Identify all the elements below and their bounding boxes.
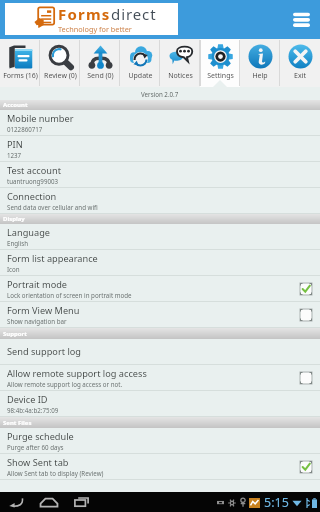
button[interactable]: Mobile number	[0, 110, 320, 136]
button[interactable]: Review (0)	[40, 39, 80, 87]
staticText: Form list appearance	[7, 252, 98, 265]
staticText: Exit	[294, 71, 306, 81]
staticText: Account	[3, 101, 28, 109]
button[interactable]: Language	[0, 224, 320, 250]
staticText: Language	[7, 226, 50, 239]
staticText: Test account	[7, 164, 61, 177]
staticText: Sent Files	[3, 419, 32, 427]
button[interactable]: Form list appearance	[0, 250, 320, 276]
staticText: Forms	[58, 4, 111, 24]
button[interactable]: Form View Menu	[0, 302, 320, 328]
staticText: 0122860717	[7, 125, 43, 133]
staticText: PIN	[7, 138, 23, 151]
staticText: English	[7, 239, 29, 247]
button[interactable]: Device ID	[0, 391, 320, 417]
staticText: Connection	[7, 190, 57, 203]
staticText: tuantruong99003	[7, 177, 59, 185]
staticText: Settings	[207, 71, 234, 81]
staticText: 5:15	[264, 494, 289, 511]
staticText: 98:4b:4a:b2:75:09	[7, 406, 59, 414]
staticText: Purge after 60 days	[7, 443, 64, 451]
button[interactable]: Menu	[289, 8, 313, 32]
staticText: Device ID	[7, 393, 48, 406]
staticText: Allow remote support log access	[7, 367, 147, 380]
staticText: Mobile number	[7, 112, 74, 125]
button[interactable]: Help	[240, 39, 280, 87]
staticText: Allow Sent tab to display (Review)	[7, 469, 104, 477]
staticText: Technology for better	[58, 24, 132, 34]
staticText: Send (0)	[87, 71, 114, 81]
button[interactable]: Forms (16)	[0, 39, 40, 87]
button[interactable]: Settings	[200, 39, 240, 87]
staticText: Send support log	[7, 345, 81, 358]
button[interactable]: Recent apps	[65, 492, 97, 512]
button[interactable]: Connection	[0, 188, 320, 214]
staticText: 1237	[7, 151, 22, 159]
button[interactable]: Portrait mode	[0, 276, 320, 302]
button[interactable]: Send (0)	[80, 39, 120, 87]
button[interactable]: Update	[120, 39, 160, 87]
staticText: Show Sent tab	[7, 456, 69, 469]
staticText: Update	[128, 71, 153, 81]
button[interactable]: Home	[32, 492, 65, 512]
staticText: Support	[3, 330, 27, 338]
staticText: Lock orientation of screen in portrait m…	[7, 291, 132, 299]
button[interactable]: Allow remote support log access	[0, 365, 320, 391]
button[interactable]: Exit	[280, 39, 320, 87]
button[interactable]: Test account	[0, 162, 320, 188]
staticText: Allow remote support log access or not.	[7, 380, 123, 388]
button[interactable]: Send support log	[0, 339, 320, 365]
staticText: Forms (16)	[3, 71, 38, 81]
staticText: Purge schedule	[7, 430, 74, 443]
button[interactable]: Show Sent tab	[0, 454, 320, 480]
staticText: Show navigation bar	[7, 317, 67, 325]
staticText: Send data over cellular and wifi	[7, 203, 98, 211]
staticText: direct	[111, 4, 157, 24]
button[interactable]: PIN	[0, 136, 320, 162]
staticText: Notices	[168, 71, 193, 81]
staticText: Review (0)	[44, 71, 77, 81]
staticText: Portrait mode	[7, 278, 68, 291]
staticText: Form View Menu	[7, 304, 80, 317]
staticText: Help	[252, 71, 268, 81]
button[interactable]: Back	[0, 492, 32, 512]
staticText: Version 2.0.7	[141, 90, 179, 98]
staticText: Display	[3, 215, 25, 223]
staticText: Icon	[7, 265, 20, 273]
button[interactable]: Notices	[160, 39, 200, 87]
button[interactable]: Purge schedule	[0, 428, 320, 454]
